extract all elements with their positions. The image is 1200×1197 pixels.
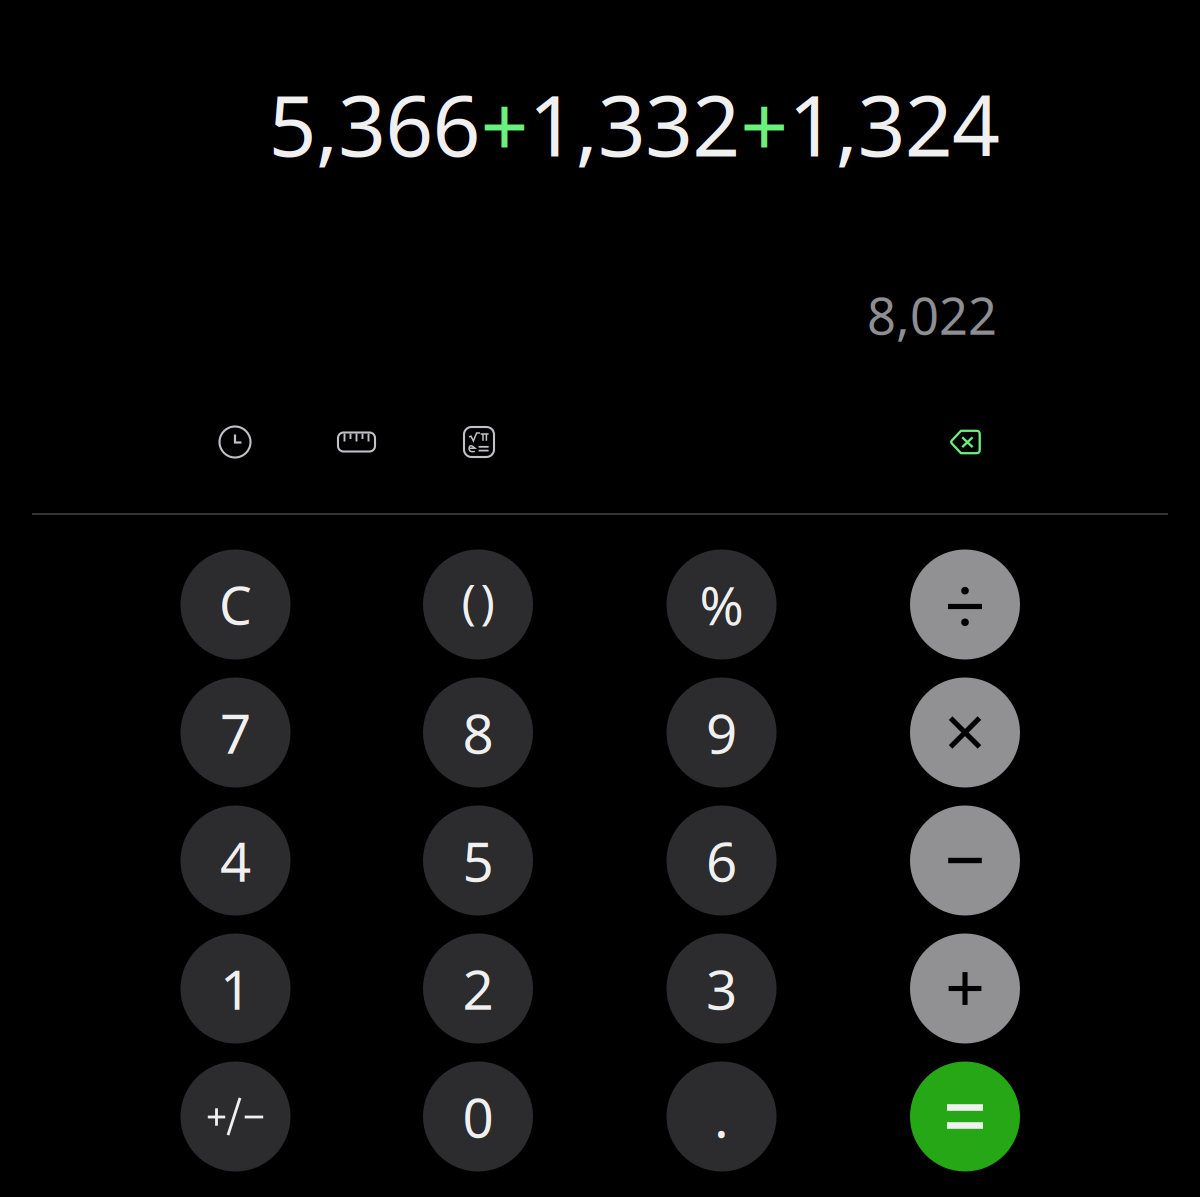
staticText: 6 [706,824,737,897]
staticText: 0 [462,1080,493,1153]
button[interactable]: Divide [910,549,1020,659]
staticText: 8 [462,696,493,769]
staticText: C [219,570,252,639]
button[interactable]: Toggle sign [180,1061,290,1171]
staticText: . [714,1080,729,1153]
button[interactable]: . [666,1061,776,1171]
button[interactable]: Multiply [910,677,1020,787]
staticText: ( ) [461,569,494,632]
staticText: 4 [220,824,251,897]
button[interactable]: 3 [666,933,776,1043]
button[interactable]: History [205,412,265,472]
button[interactable]: Add [910,933,1020,1043]
staticText: 1 [220,952,251,1025]
staticText: 1,324 [788,68,1000,180]
staticText: 3 [706,952,737,1025]
button[interactable]: 0 [423,1061,533,1171]
button[interactable]: 4 [180,805,290,915]
button[interactable]: % [666,549,776,659]
button[interactable]: 7 [180,677,290,787]
staticText: + [740,68,788,180]
staticText: % [699,569,743,640]
button[interactable]: Equals [910,1061,1020,1171]
staticText: 5 [462,824,493,897]
button[interactable]: ( ) [423,549,533,659]
staticText: 7 [220,696,251,769]
button[interactable]: 8 [423,677,533,787]
button[interactable]: 1 [180,933,290,1043]
staticText: 2 [462,952,493,1025]
button[interactable]: 5 [423,805,533,915]
staticText: 8,022 [867,281,997,349]
button[interactable]: C [180,549,290,659]
staticText: 9 [706,696,737,769]
button[interactable]: 9 [666,677,776,787]
staticText: 1,332 [528,68,740,180]
button[interactable]: Subtract [910,805,1020,915]
button[interactable]: 6 [666,805,776,915]
button[interactable]: Scientific calculator [449,412,509,472]
button[interactable]: 2 [423,933,533,1043]
staticText: 5,366 [269,68,480,180]
button[interactable]: Delete [935,412,995,472]
button[interactable]: Unit conversion [326,412,386,472]
staticText: + [480,68,528,180]
